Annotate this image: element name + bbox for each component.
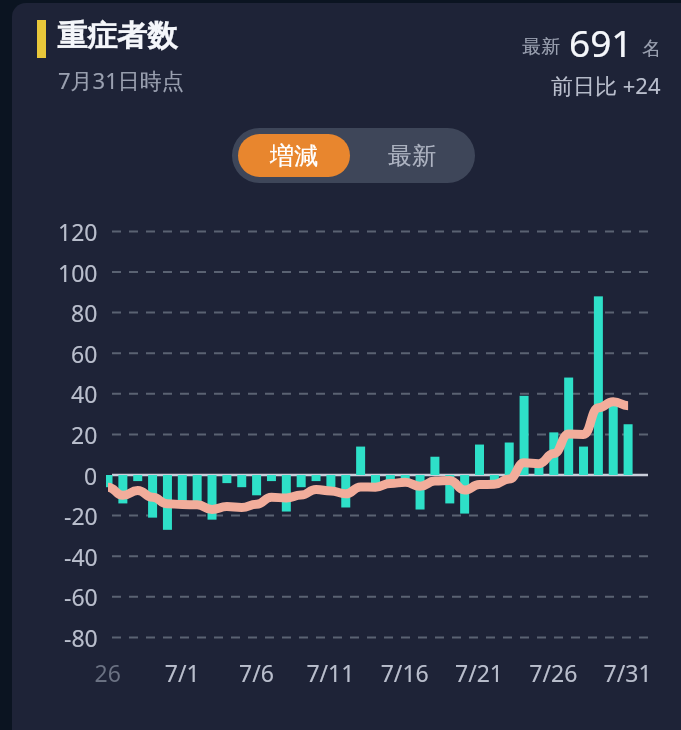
button[interactable]: 重症者数 7月31日時点: [24, 12, 284, 92]
button[interactable]: [238, 134, 350, 177]
button[interactable]: [356, 134, 468, 177]
